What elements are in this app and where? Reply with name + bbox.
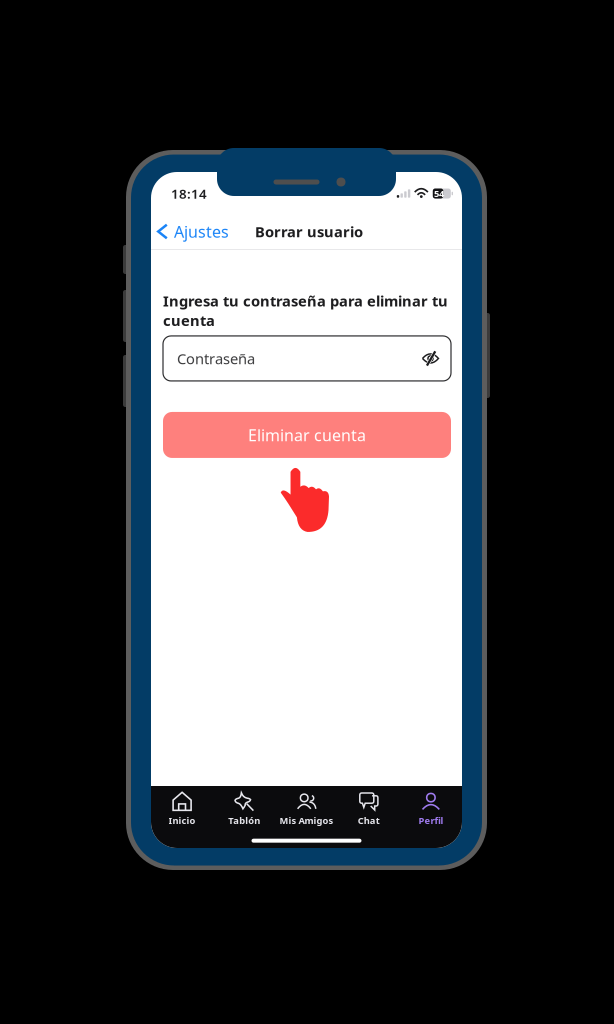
button[interactable]: Mostrar contraseña: [422, 352, 439, 365]
staticText: Perfil: [418, 814, 443, 827]
button[interactable]: Inicio: [151, 787, 213, 831]
button[interactable]: Mis Amigos: [275, 787, 338, 831]
staticText: Inicio: [169, 814, 196, 827]
button[interactable]: Tablón: [213, 787, 275, 831]
staticText: Ajustes: [174, 221, 229, 242]
button[interactable]: Ajustes: [157, 216, 229, 247]
staticText: Mis Amigos: [279, 814, 333, 827]
staticText: Ingresa tu contraseña para eliminar tu c…: [163, 291, 448, 330]
staticText: Contraseña: [177, 349, 255, 368]
button[interactable]: Perfil: [400, 787, 462, 831]
staticText: Chat: [358, 814, 380, 827]
staticText: 18:14: [171, 185, 207, 202]
staticText: Tablón: [228, 814, 260, 827]
staticText: Borrar usuario: [255, 222, 363, 241]
staticText: Eliminar cuenta: [248, 424, 366, 445]
button[interactable]: Chat: [338, 787, 400, 831]
button[interactable]: Eliminar cuenta: [163, 412, 451, 458]
staticText: 54: [434, 187, 444, 200]
